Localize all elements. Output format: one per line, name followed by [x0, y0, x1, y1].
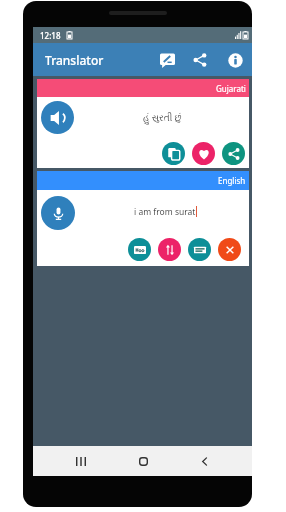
button[interactable]: Info	[221, 46, 249, 74]
button[interactable]: Translate	[128, 238, 151, 261]
button[interactable]: Microphone	[41, 196, 75, 230]
button[interactable]: Favorite	[192, 142, 215, 165]
button[interactable]: Clear	[218, 238, 241, 261]
button[interactable]: Back	[191, 448, 217, 474]
staticText: Gujarati	[216, 83, 246, 94]
button[interactable]: Share	[222, 142, 245, 165]
staticText: 12:18	[40, 30, 61, 41]
staticText: English	[218, 175, 246, 186]
button[interactable]: Swap languages	[158, 238, 181, 261]
button[interactable]: Keyboard	[188, 238, 211, 261]
staticText: Translator	[45, 52, 104, 68]
button[interactable]: Copy	[162, 142, 185, 165]
staticText: i am from surat	[134, 206, 196, 218]
button[interactable]: Feedback	[153, 46, 181, 74]
staticText: હું સુરતી છું	[143, 111, 182, 123]
button[interactable]: Recents	[68, 448, 94, 474]
button[interactable]: Speak	[41, 101, 74, 134]
button[interactable]: Home	[130, 448, 156, 474]
button[interactable]: Share	[186, 46, 214, 74]
